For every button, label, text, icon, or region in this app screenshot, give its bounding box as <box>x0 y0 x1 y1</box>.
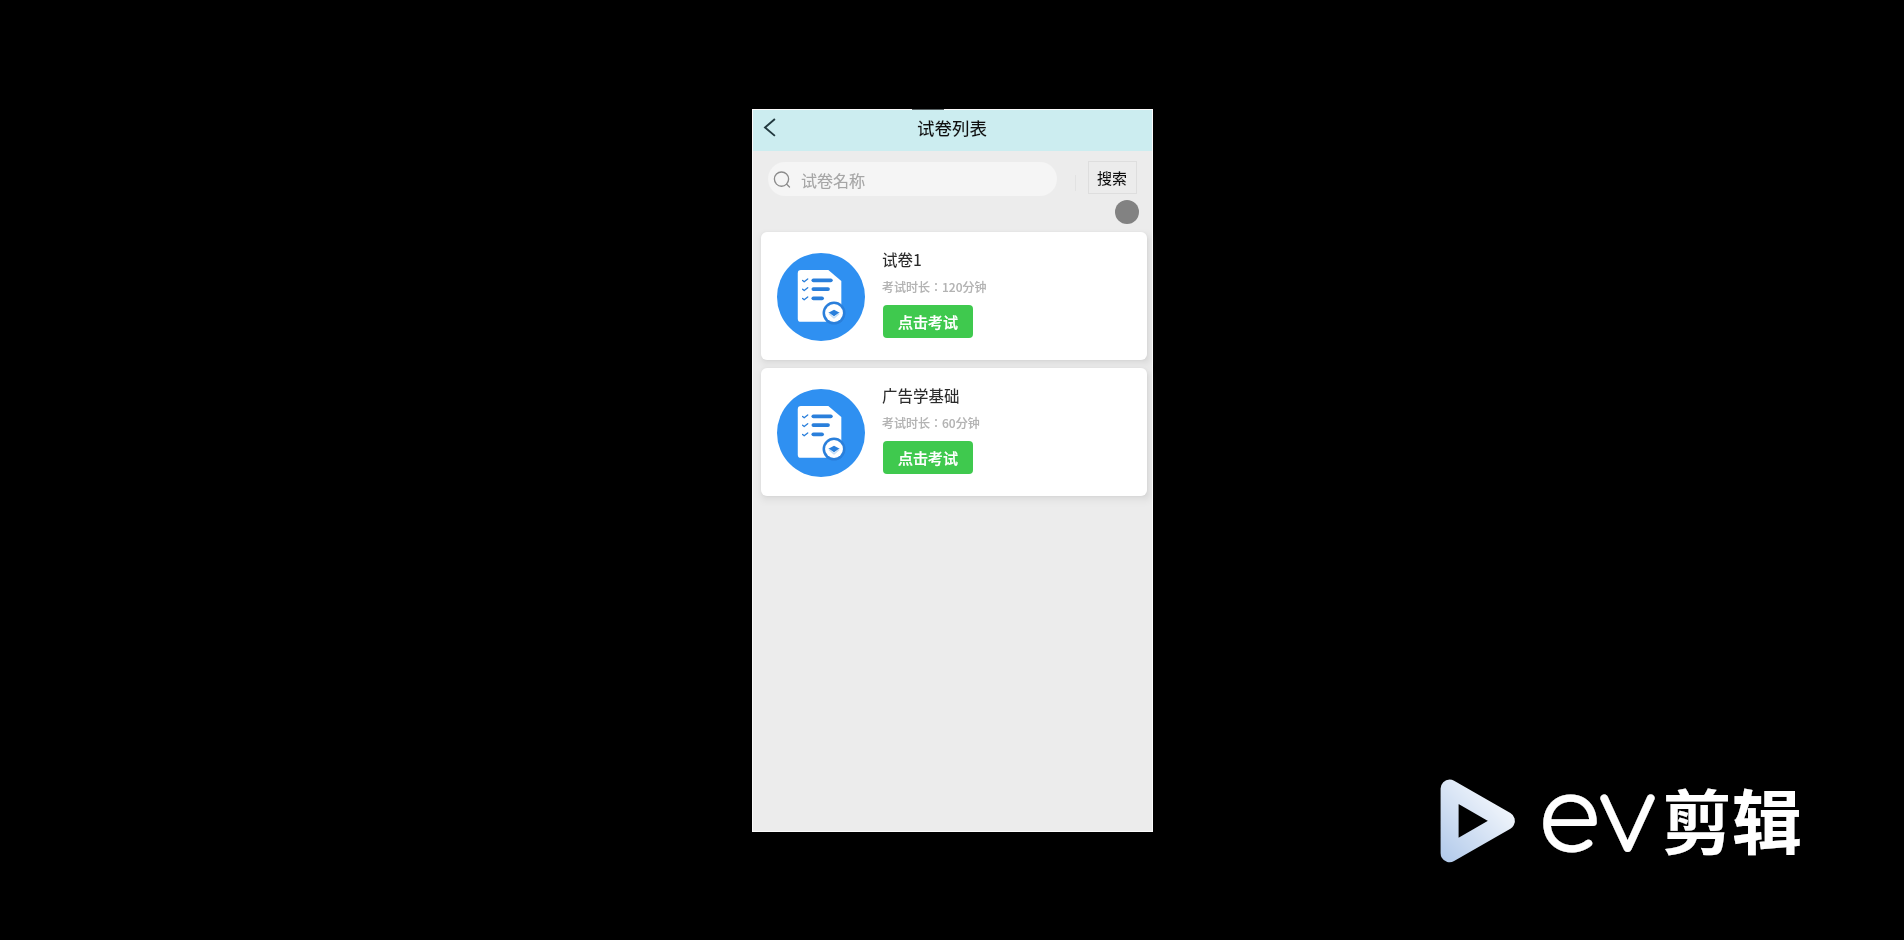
staticText: ev <box>1537 760 1657 876</box>
button[interactable]: 试卷名称 <box>768 162 1057 196</box>
staticText: 试卷名称 <box>801 168 866 191</box>
button[interactable]: 试卷1 <box>761 232 1147 360</box>
staticText: 点击考试 <box>898 447 959 469</box>
staticText: 广告学基础 <box>882 384 960 406</box>
button[interactable]: 广告学基础 <box>761 368 1147 496</box>
staticText: 考试时长：60分钟 <box>882 414 980 431</box>
staticText: 点击考试 <box>898 311 959 333</box>
staticText: 试卷列表 <box>917 115 987 140</box>
button[interactable]: 搜索 <box>1088 161 1137 194</box>
button[interactable]: 点击考试 <box>883 305 973 338</box>
button[interactable]: Back <box>754 109 794 151</box>
button[interactable]: 点击考试 <box>883 441 973 474</box>
staticText: 试卷1 <box>882 248 922 270</box>
staticText: 剪辑 <box>1662 768 1802 869</box>
staticText: 考试时长：120分钟 <box>882 278 987 295</box>
staticText: 搜索 <box>1097 167 1128 189</box>
